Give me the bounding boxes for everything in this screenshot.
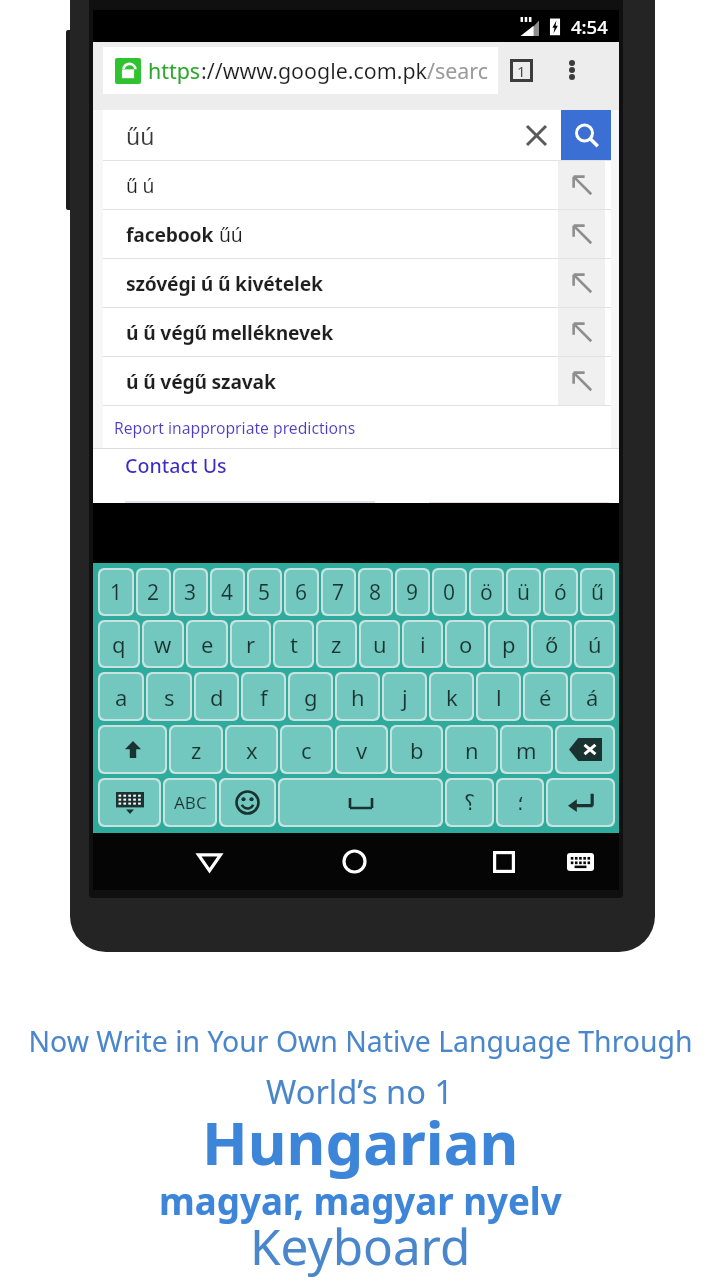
- button[interactable]: Insert suggestion: [558, 308, 605, 356]
- button[interactable]: 1: [100, 570, 132, 614]
- button[interactable]: r: [232, 622, 269, 666]
- button[interactable]: 4: [212, 570, 243, 614]
- button[interactable]: ú ű végű melléknevek: [103, 308, 611, 356]
- staticText: é: [539, 682, 552, 712]
- button[interactable]: Insert suggestion: [558, 259, 605, 307]
- staticText: á: [586, 682, 599, 712]
- button[interactable]: Search: [561, 110, 611, 160]
- button[interactable]: Insert suggestion: [558, 357, 605, 405]
- button[interactable]: ö: [471, 570, 502, 614]
- button[interactable]: s: [148, 674, 190, 719]
- button[interactable]: ű ú: [103, 161, 611, 209]
- button[interactable]: Insert suggestion: [558, 161, 605, 209]
- button[interactable]: [100, 780, 159, 825]
- button[interactable]: é: [525, 674, 566, 719]
- staticText: 1: [110, 578, 123, 607]
- button[interactable]: https: [103, 47, 498, 94]
- button[interactable]: j: [384, 674, 425, 719]
- button[interactable]: ؟: [447, 780, 492, 825]
- button[interactable]: 0: [434, 570, 465, 614]
- button[interactable]: Home: [318, 833, 390, 890]
- button[interactable]: i: [404, 622, 441, 666]
- button[interactable]: Contact Us: [125, 452, 227, 479]
- staticText: 3: [184, 578, 197, 607]
- button[interactable]: ü: [508, 570, 539, 614]
- button[interactable]: Report inappropriate predictions: [103, 406, 611, 448]
- button[interactable]: 6: [286, 570, 317, 614]
- button[interactable]: Clear: [511, 110, 561, 160]
- button[interactable]: w: [144, 622, 182, 666]
- staticText: ű ú: [126, 172, 155, 198]
- staticText: űú: [219, 221, 243, 247]
- staticText: ؟: [464, 791, 476, 815]
- button[interactable]: c: [282, 727, 331, 772]
- button[interactable]: [280, 780, 441, 825]
- button[interactable]: 2: [138, 570, 169, 614]
- button[interactable]: [221, 780, 274, 825]
- button[interactable]: u: [361, 622, 398, 666]
- button[interactable]: q: [100, 622, 138, 666]
- button[interactable]: á: [572, 674, 613, 719]
- staticText: ABC: [174, 791, 207, 814]
- staticText: c: [301, 735, 312, 765]
- button[interactable]: l: [478, 674, 519, 719]
- button[interactable]: m: [502, 727, 551, 772]
- button[interactable]: Back: [173, 833, 245, 890]
- button[interactable]: [100, 727, 165, 772]
- button[interactable]: a: [100, 674, 142, 719]
- staticText: https: [148, 56, 201, 85]
- button[interactable]: f: [243, 674, 284, 719]
- button[interactable]: facebook: [103, 210, 611, 258]
- button[interactable]: z: [171, 727, 221, 772]
- button[interactable]: [557, 727, 613, 772]
- button[interactable]: ő: [533, 622, 570, 666]
- staticText: szóvégi ú ű kivételek: [126, 270, 323, 296]
- button[interactable]: [548, 780, 613, 825]
- button[interactable]: d: [196, 674, 237, 719]
- staticText: 7: [332, 578, 345, 607]
- button[interactable]: k: [431, 674, 472, 719]
- staticText: q: [112, 629, 126, 659]
- staticText: d: [210, 682, 224, 712]
- button[interactable]: n: [447, 727, 496, 772]
- button[interactable]: ú ű végű szavak: [103, 357, 611, 405]
- button[interactable]: g: [290, 674, 331, 719]
- staticText: o: [459, 629, 473, 659]
- staticText: 8: [369, 578, 382, 607]
- staticText: z: [191, 735, 202, 765]
- staticText: m: [516, 735, 537, 765]
- staticText: h: [351, 682, 365, 712]
- button[interactable]: ABC: [165, 780, 215, 825]
- button[interactable]: b: [392, 727, 441, 772]
- staticText: Keyboard: [250, 1212, 471, 1279]
- button[interactable]: z: [318, 622, 355, 666]
- button[interactable]: Switch keyboard: [550, 833, 610, 890]
- button[interactable]: 5: [249, 570, 280, 614]
- staticText: l: [496, 682, 502, 712]
- button[interactable]: ó: [545, 570, 576, 614]
- button[interactable]: Recent apps: [468, 833, 540, 890]
- staticText: 1: [517, 61, 526, 81]
- button[interactable]: szóvégi ú ű kivételek: [103, 259, 611, 307]
- button[interactable]: Tabs: [498, 42, 545, 98]
- staticText: x: [246, 735, 258, 765]
- button[interactable]: p: [490, 622, 527, 666]
- button[interactable]: Insert suggestion: [558, 210, 605, 258]
- button[interactable]: 7: [323, 570, 354, 614]
- button[interactable]: o: [447, 622, 484, 666]
- button[interactable]: h: [337, 674, 378, 719]
- button[interactable]: v: [337, 727, 386, 772]
- button[interactable]: t: [275, 622, 312, 666]
- button[interactable]: ú: [576, 622, 613, 666]
- button[interactable]: 9: [397, 570, 428, 614]
- staticText: k: [446, 682, 458, 712]
- button[interactable]: 8: [360, 570, 391, 614]
- button[interactable]: ű: [582, 570, 613, 614]
- staticText: 2: [147, 578, 160, 607]
- staticText: f: [260, 682, 268, 712]
- button[interactable]: More options: [545, 42, 599, 98]
- button[interactable]: x: [227, 727, 276, 772]
- button[interactable]: e: [188, 622, 226, 666]
- button[interactable]: ؛: [498, 780, 542, 825]
- button[interactable]: 3: [175, 570, 206, 614]
